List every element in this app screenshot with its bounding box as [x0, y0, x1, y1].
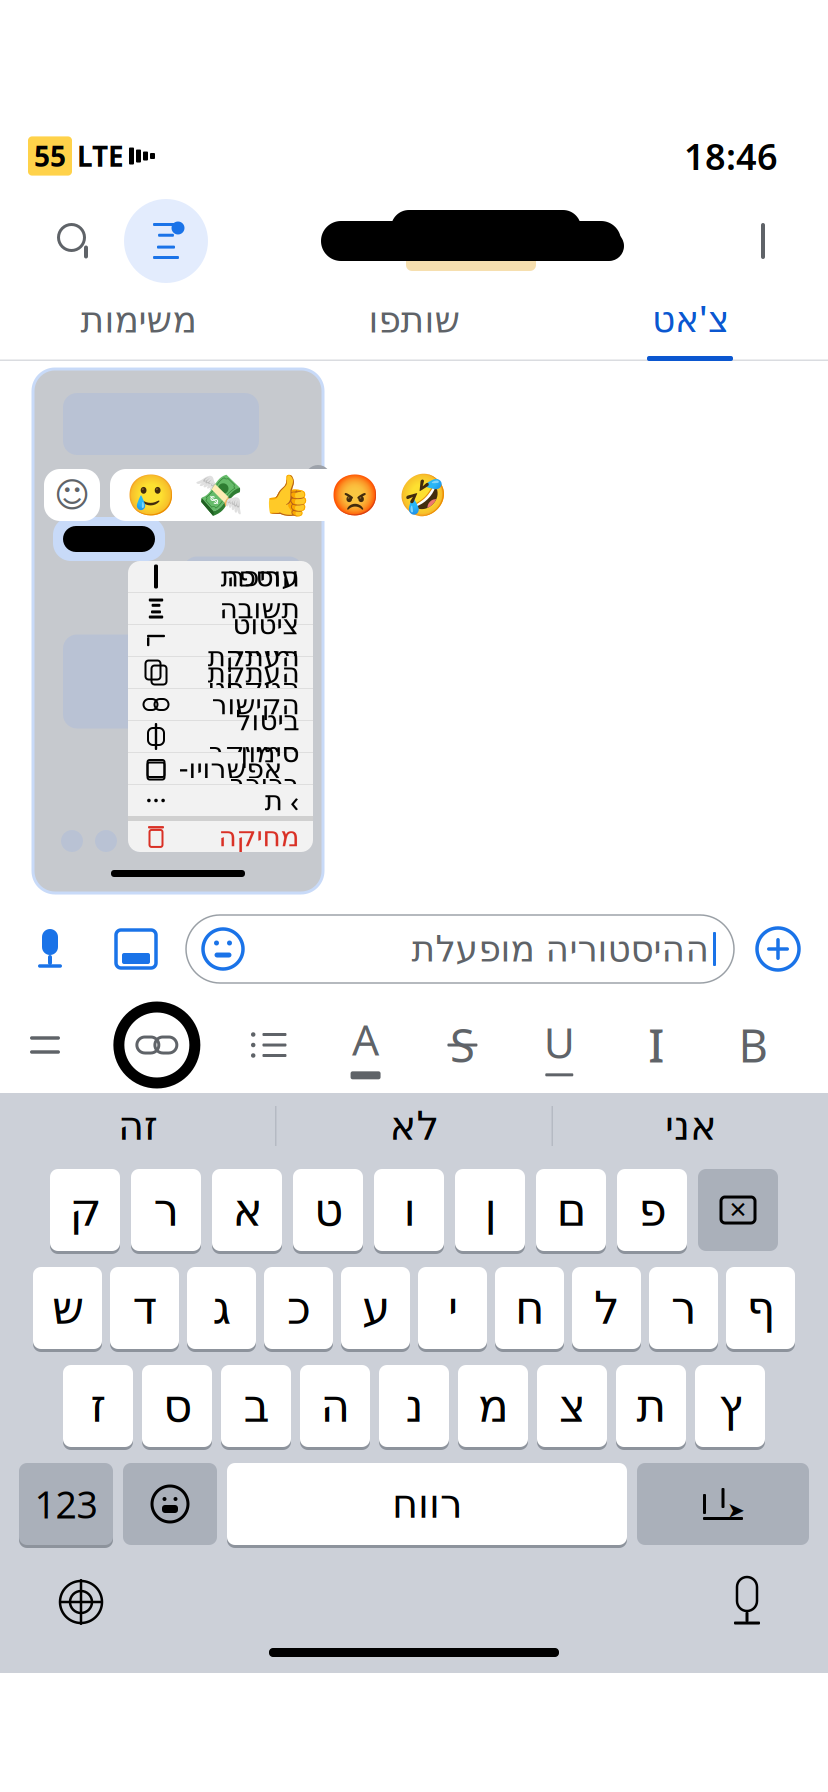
staticText: ג — [212, 1282, 231, 1334]
button[interactable]: ב — [221, 1365, 291, 1450]
button[interactable]: ף — [726, 1267, 795, 1352]
button[interactable]: ד — [110, 1267, 179, 1352]
staticText: ✕ — [728, 1197, 747, 1223]
staticText: ס — [162, 1380, 191, 1432]
staticText: משימות — [80, 300, 196, 340]
staticText: ל — [593, 1282, 619, 1334]
staticText: מחיקה — [218, 821, 299, 852]
button[interactable]: ן — [455, 1169, 525, 1254]
staticText: B — [738, 1015, 767, 1075]
button[interactable]: ז — [63, 1365, 133, 1450]
staticText: LTE — [77, 137, 124, 175]
staticText: U — [544, 1014, 575, 1070]
staticText: ➤ — [727, 1498, 745, 1522]
staticText: ט — [313, 1184, 342, 1236]
button[interactable]: הוספה — [746, 917, 810, 981]
button[interactable]: א — [212, 1169, 282, 1254]
button[interactable]: ג — [187, 1267, 256, 1352]
button[interactable]: אמוג'י — [200, 926, 246, 972]
button[interactable]: סימון בכוכב — [128, 753, 313, 784]
staticText: י — [447, 1282, 457, 1334]
button[interactable]: נ — [379, 1365, 449, 1450]
staticText: פ — [638, 1184, 666, 1236]
button[interactable]: קו חוצה — [431, 1014, 493, 1076]
staticText: רווח — [391, 1481, 462, 1527]
button[interactable]: העתקת הקישור להודעה — [128, 689, 313, 720]
staticText: ב — [243, 1380, 269, 1432]
button[interactable]: ו — [374, 1169, 444, 1254]
staticText: ץ — [718, 1380, 742, 1432]
staticText: ההיסטוריה מופעלת — [411, 929, 709, 969]
staticText: A — [352, 1011, 379, 1067]
button[interactable]: ם — [536, 1169, 606, 1254]
button[interactable]: ר — [649, 1267, 718, 1352]
button[interactable]: חיפוש — [44, 210, 106, 272]
button[interactable]: זה — [0, 1095, 275, 1157]
button[interactable]: ע — [341, 1267, 410, 1352]
staticText: 😡 — [330, 472, 380, 518]
button[interactable]: מודגש — [722, 1014, 784, 1076]
staticText: העתקת הטקסט — [207, 641, 299, 704]
button[interactable]: כ — [264, 1267, 333, 1352]
button[interactable]: ת — [616, 1365, 686, 1450]
button[interactable]: עריכה — [128, 561, 313, 592]
staticText: 18:46 — [684, 132, 778, 180]
staticText: נ — [405, 1380, 423, 1432]
staticText: 🤣 — [398, 472, 448, 518]
staticText: ם — [556, 1184, 586, 1236]
button[interactable]: ט — [293, 1169, 363, 1254]
button[interactable]: סגירה — [14, 1014, 76, 1076]
button[interactable]: ס — [142, 1365, 212, 1450]
button[interactable]: 123 — [19, 1463, 113, 1548]
button[interactable]: צבע טקסט — [335, 1014, 397, 1076]
button[interactable]: שליחה — [637, 1463, 809, 1548]
button[interactable]: צ — [537, 1365, 607, 1450]
button[interactable]: שותפו — [276, 289, 552, 351]
button[interactable]: הוספת תגובה — [44, 469, 100, 521]
staticText: ן — [484, 1184, 496, 1236]
button[interactable]: רשימה — [238, 1014, 300, 1076]
button[interactable]: מחיקה — [698, 1169, 778, 1254]
staticText: ת — [636, 1380, 666, 1432]
button[interactable]: הוספת תשובה לשרשור — [128, 593, 313, 624]
button[interactable]: קו תחתון — [528, 1014, 590, 1076]
button[interactable]: תמונה — [104, 917, 168, 981]
button[interactable]: לא — [276, 1095, 551, 1157]
button[interactable]: ץ — [695, 1365, 765, 1450]
button[interactable]: אני — [553, 1095, 828, 1157]
button[interactable]: ביטול המעקב — [128, 721, 313, 752]
button[interactable]: הקלטה קולית — [18, 917, 82, 981]
button[interactable]: י — [418, 1267, 487, 1352]
staticText: ביטול המעקב — [208, 705, 299, 768]
button[interactable]: ח — [495, 1267, 564, 1352]
button[interactable]: אמוג'י — [123, 1463, 217, 1548]
button[interactable]: מ — [458, 1365, 528, 1450]
button[interactable]: נטוי — [625, 1014, 687, 1076]
button[interactable]: העתקת הטקסט — [128, 657, 313, 688]
button[interactable]: ש — [33, 1267, 102, 1352]
button[interactable]: אפשרויות נוספות — [128, 785, 313, 816]
button[interactable]: שרשורים — [124, 199, 208, 283]
button[interactable]: שינוי שפה — [44, 1565, 118, 1639]
staticText: ד — [132, 1282, 157, 1334]
button[interactable]: ל — [572, 1267, 641, 1352]
button[interactable]: ק — [50, 1169, 120, 1254]
staticText: S — [450, 1015, 475, 1075]
staticText: צ — [558, 1380, 585, 1432]
staticText: ף — [746, 1282, 775, 1334]
button[interactable]: ה — [300, 1365, 370, 1450]
button[interactable]: ר — [131, 1169, 201, 1254]
button[interactable]: קישור — [111, 999, 203, 1091]
staticText: ח — [514, 1282, 544, 1334]
button[interactable]: הכתבה — [710, 1565, 784, 1639]
staticText: I — [648, 1015, 664, 1075]
button[interactable]: משימות — [0, 289, 276, 351]
staticText: עריכה — [226, 561, 299, 592]
button[interactable]: רווח — [227, 1463, 627, 1548]
staticText: צ'אט — [651, 294, 728, 342]
button[interactable]: צ'אט — [552, 289, 828, 351]
button[interactable]: הבא — [734, 210, 792, 272]
button[interactable]: פ — [617, 1169, 687, 1254]
button[interactable]: ציטוט ומענה — [128, 625, 313, 656]
button[interactable]: מחיקה — [128, 821, 313, 852]
